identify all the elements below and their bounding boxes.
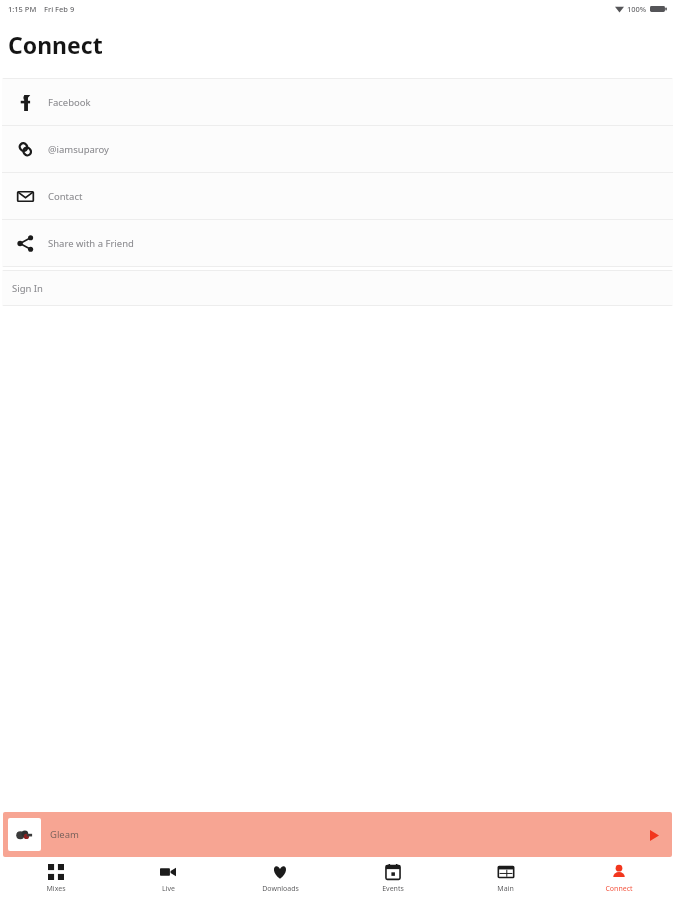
other: Contact xyxy=(2,188,48,205)
staticText: 100% xyxy=(627,4,647,14)
staticText: Connect xyxy=(8,29,103,60)
staticText: Contact xyxy=(48,190,83,203)
staticText: Downloads xyxy=(262,884,299,894)
staticText: Main xyxy=(497,884,514,894)
button[interactable]: Facebook xyxy=(2,79,673,125)
staticText: Events xyxy=(382,884,404,894)
staticText: Gleam xyxy=(50,828,79,841)
staticText: Mixes xyxy=(46,884,66,894)
button[interactable]: Mixes xyxy=(0,857,112,900)
button[interactable]: Downloads xyxy=(224,857,336,900)
button[interactable]: Events xyxy=(336,857,449,900)
staticText: Connect xyxy=(605,884,633,894)
other: Instagram link xyxy=(2,141,48,158)
button[interactable]: Instagram link xyxy=(2,126,673,172)
button[interactable]: Play xyxy=(641,822,667,848)
staticText: Facebook xyxy=(48,96,91,109)
other: Facebook xyxy=(2,94,48,111)
button[interactable]: Main xyxy=(449,857,562,900)
button[interactable]: Live xyxy=(112,857,224,900)
button[interactable]: Gleam xyxy=(3,812,672,857)
staticText: Sign In xyxy=(12,282,43,295)
staticText: 1:15 PM xyxy=(8,4,37,14)
other: Share xyxy=(2,235,48,252)
button[interactable]: Sign In xyxy=(2,271,673,305)
button[interactable]: Contact xyxy=(2,173,673,219)
staticText: @iamsuparoy xyxy=(48,143,109,156)
button[interactable]: Share xyxy=(2,220,673,266)
button[interactable]: Connect xyxy=(562,857,675,900)
staticText: Fri Feb 9 xyxy=(44,4,75,14)
staticText: Live xyxy=(162,884,175,894)
staticText: Share with a Friend xyxy=(48,237,134,250)
